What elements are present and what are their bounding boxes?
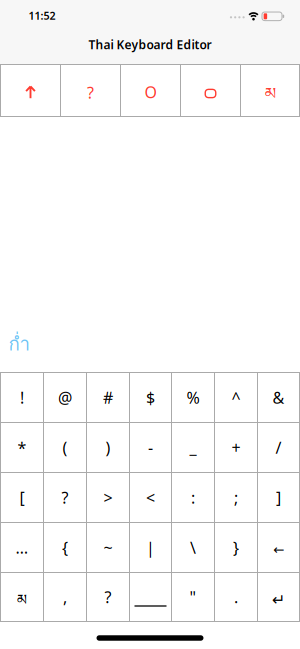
button[interactable]: |: [130, 523, 171, 572]
button[interactable]: མ: [1, 573, 43, 621]
staticText: …: [15, 537, 28, 558]
staticText: *: [17, 437, 26, 458]
button[interactable]: ": [172, 573, 214, 621]
staticText: |: [146, 537, 155, 558]
button[interactable]: !: [1, 373, 43, 422]
button[interactable]: ?: [61, 65, 120, 116]
button[interactable]: ↵: [258, 573, 299, 621]
button[interactable]: ;: [215, 473, 257, 522]
staticText: ?: [61, 487, 68, 508]
staticText: +: [231, 437, 240, 458]
staticText: }: [233, 537, 239, 558]
staticText: .: [234, 586, 238, 608]
staticText: ?: [104, 586, 111, 608]
staticText: [: [19, 487, 24, 508]
staticText: ~: [103, 537, 112, 558]
staticText: མ: [17, 584, 27, 624]
button[interactable]: :: [172, 473, 214, 522]
staticText: \: [190, 537, 196, 558]
button[interactable]: _: [172, 423, 214, 472]
button[interactable]: ?: [44, 473, 86, 522]
button[interactable]: [130, 573, 171, 621]
staticText: ←: [273, 542, 284, 557]
staticText: ": [189, 586, 196, 608]
staticText: Thai Keyboard Editor: [88, 36, 211, 52]
staticText: ↵: [272, 591, 285, 609]
button[interactable]: ^: [215, 373, 257, 422]
staticText: ;: [234, 487, 238, 508]
button[interactable]: …: [1, 523, 43, 572]
button[interactable]: [1, 65, 60, 116]
button[interactable]: &: [258, 373, 299, 422]
staticText: !: [20, 387, 24, 408]
button[interactable]: (: [44, 423, 86, 472]
staticText: ?: [87, 82, 94, 103]
staticText: མ: [264, 76, 275, 120]
button[interactable]: /: [258, 423, 299, 472]
staticText: %: [186, 387, 199, 408]
button[interactable]: #: [87, 373, 129, 422]
button[interactable]: .: [215, 573, 257, 621]
staticText: ก่ำ: [8, 329, 29, 358]
staticText: ): [105, 437, 110, 458]
button[interactable]: ]: [258, 473, 299, 522]
staticText: ,: [63, 586, 67, 608]
button[interactable]: @: [44, 373, 86, 422]
staticText: :: [191, 487, 195, 508]
button[interactable]: +: [215, 423, 257, 472]
staticText: #: [103, 387, 113, 408]
button[interactable]: >: [87, 473, 129, 522]
button[interactable]: -: [130, 423, 171, 472]
button[interactable]: [181, 65, 240, 116]
button[interactable]: *: [1, 423, 43, 472]
staticText: _: [189, 437, 196, 458]
button[interactable]: {: [44, 523, 86, 572]
staticText: ^: [231, 387, 240, 408]
staticText: (: [62, 437, 67, 458]
staticText: /: [275, 437, 281, 458]
staticText: O: [144, 81, 156, 103]
staticText: 11:52: [28, 8, 55, 23]
button[interactable]: }: [215, 523, 257, 572]
staticText: {: [62, 537, 68, 558]
button[interactable]: %: [172, 373, 214, 422]
staticText: @: [58, 387, 72, 408]
button[interactable]: $: [130, 373, 171, 422]
staticText: -: [148, 437, 153, 458]
staticText: &: [272, 387, 284, 408]
staticText: >: [103, 487, 112, 508]
button[interactable]: ←: [258, 523, 299, 572]
button[interactable]: ~: [87, 523, 129, 572]
staticText: ]: [276, 487, 281, 508]
button[interactable]: O: [121, 65, 180, 116]
button[interactable]: མ: [241, 65, 299, 116]
staticText: <: [146, 487, 155, 508]
button[interactable]: \: [172, 523, 214, 572]
button[interactable]: ): [87, 423, 129, 472]
button[interactable]: ,: [44, 573, 86, 621]
button[interactable]: [: [1, 473, 43, 522]
staticText: $: [146, 387, 155, 408]
button[interactable]: ?: [87, 573, 129, 621]
button[interactable]: <: [130, 473, 171, 522]
